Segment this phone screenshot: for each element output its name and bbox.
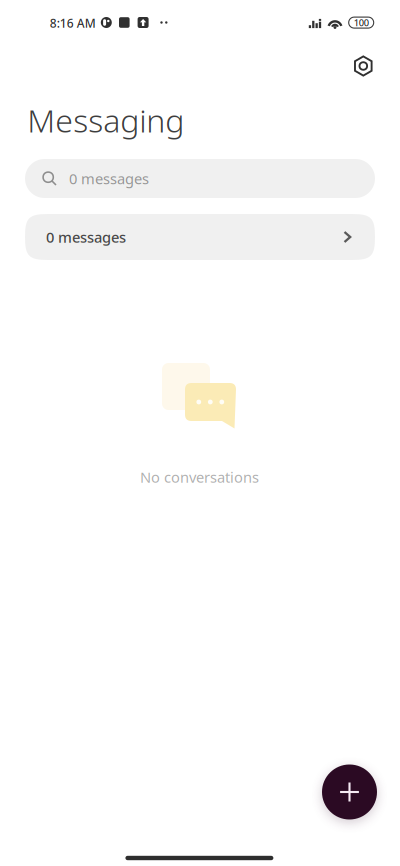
staticText: 100: [354, 16, 369, 29]
staticText: No conversations: [140, 467, 259, 487]
staticText: 0 messages: [46, 227, 126, 247]
staticText: Messaging: [27, 99, 184, 141]
button[interactable]: New message: [322, 764, 377, 819]
button[interactable]: 0 messages: [25, 214, 375, 260]
staticText: 0 messages: [69, 169, 149, 188]
button[interactable]: Settings: [345, 48, 381, 84]
staticText: 8:16 AM: [50, 15, 96, 31]
button[interactable]: 0 messages: [25, 159, 375, 198]
